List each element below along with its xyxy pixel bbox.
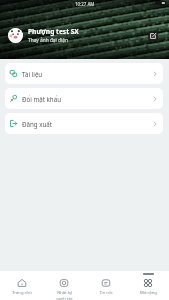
button[interactable]: Trang chủ — [0, 271, 43, 300]
button[interactable]: Đăng xuất — [5, 113, 163, 134]
staticText: Nhật ký canh tác — [56, 290, 73, 300]
staticText: Mở rộng — [140, 290, 157, 296]
button[interactable]: Chỉnh sửa hồ sơ — [148, 31, 158, 41]
staticText: 10:27 AM — [75, 1, 95, 7]
button[interactable]: Tài liệu — [5, 63, 163, 84]
staticText: Phượng test SX — [28, 27, 79, 36]
button[interactable]: Nhật ký canh tác — [43, 271, 85, 300]
staticText: Đăng xuất — [22, 120, 53, 128]
button[interactable]: Tin tức — [85, 271, 127, 300]
staticText: Tài liệu — [22, 70, 43, 78]
staticText: Trang chủ — [12, 290, 32, 296]
button[interactable]: Mở rộng — [127, 271, 169, 300]
staticText: Thay ảnh đại diện — [28, 37, 68, 44]
staticText: Đổi mật khẩu — [22, 95, 61, 103]
button[interactable]: Đổi mật khẩu — [5, 88, 163, 109]
staticText: Tin tức — [99, 290, 113, 296]
